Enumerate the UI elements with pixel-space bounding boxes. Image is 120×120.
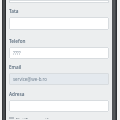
button[interactable]: service@we-b.ro (9, 73, 109, 85)
staticText: Telefon (9, 38, 26, 44)
staticText: ???? (13, 50, 21, 56)
staticText: service@we-b.ro (13, 76, 47, 82)
staticText: Email (9, 64, 22, 70)
button[interactable]: Notificare notă (9, 116, 109, 120)
button[interactable]: ???? (9, 47, 109, 59)
staticText: Adresa (9, 91, 25, 97)
button[interactable] (9, 17, 109, 30)
staticText: Notificare notă (16, 117, 49, 119)
staticText: Tata (9, 8, 19, 14)
button[interactable] (9, 100, 109, 112)
